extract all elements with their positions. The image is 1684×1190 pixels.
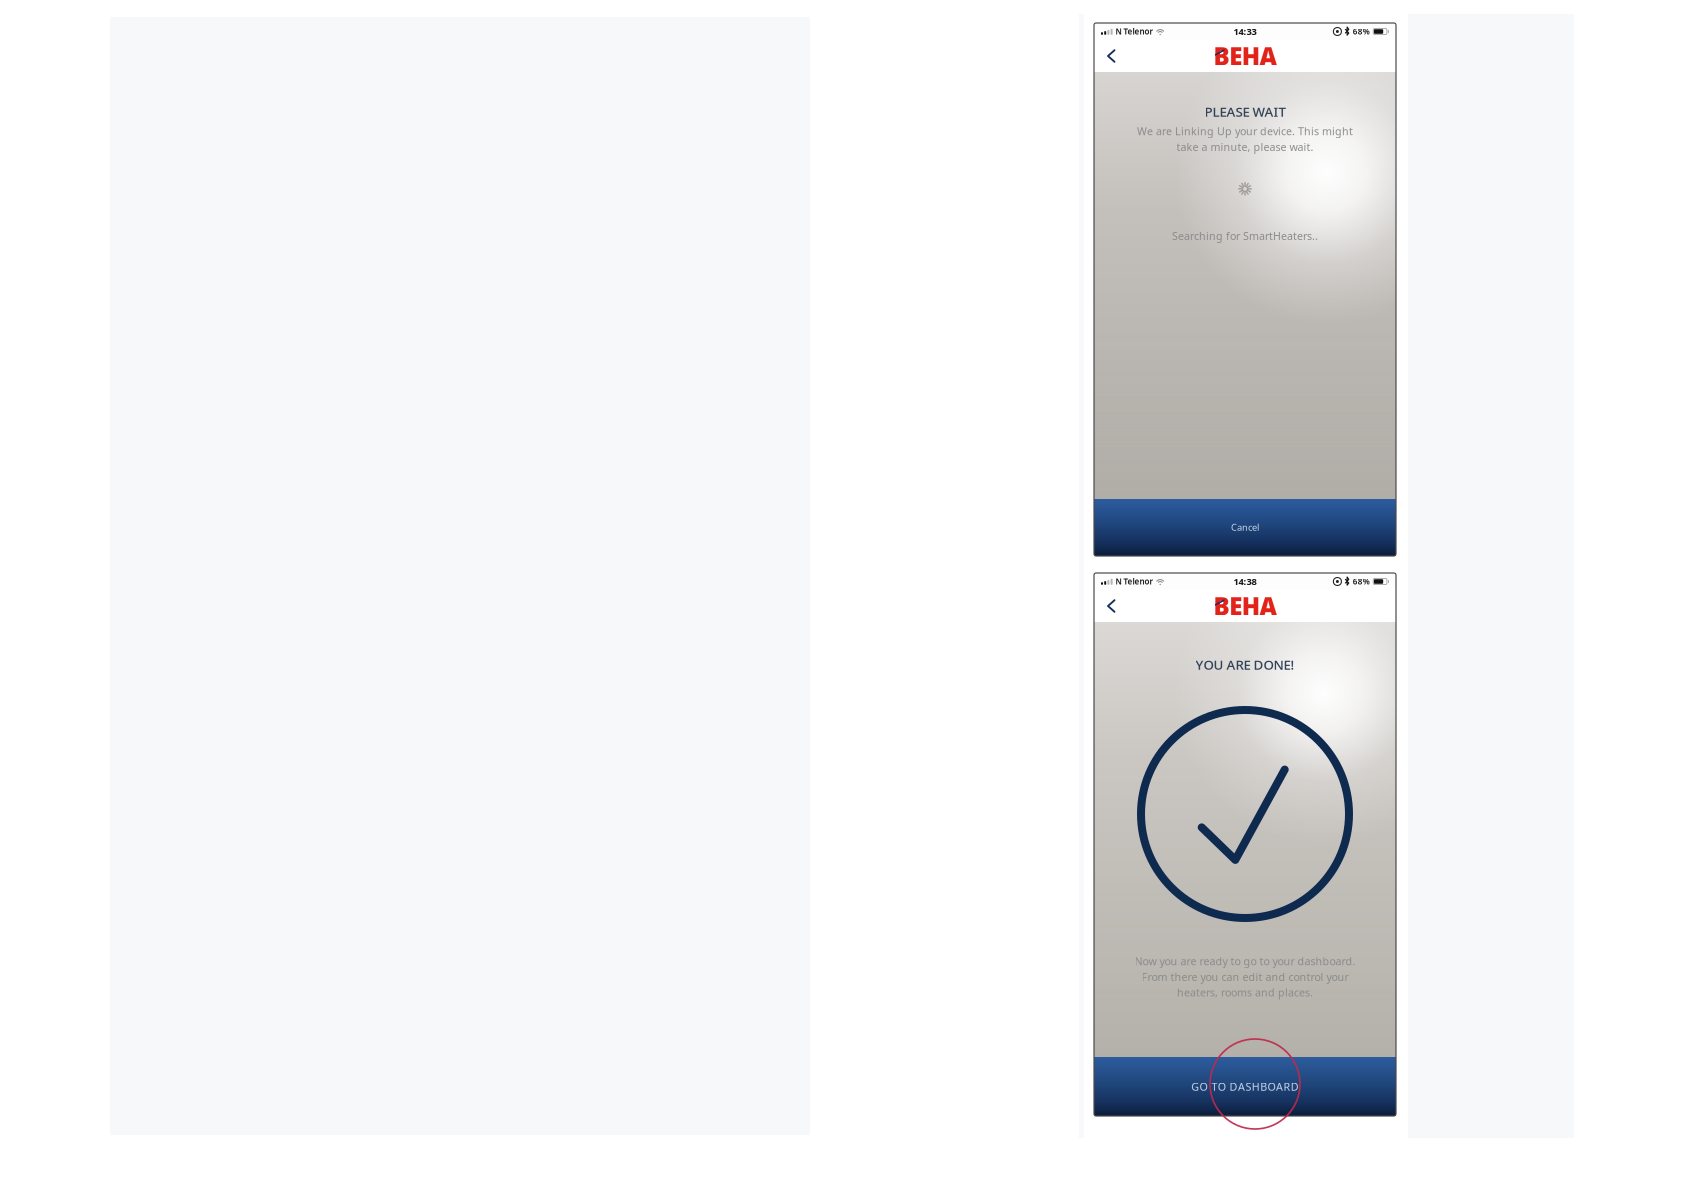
staticText: BEHA — [1213, 40, 1276, 72]
button[interactable]: Cancel — [1094, 499, 1396, 556]
staticText: From there you can edit and control your — [1141, 970, 1348, 984]
staticText: N Telenor — [1116, 576, 1153, 587]
staticText: GO TO DASHBOARD — [1191, 1079, 1299, 1094]
staticText: 14:38 — [1233, 575, 1256, 588]
staticText: BEHA — [1213, 590, 1276, 622]
staticText: PLEASE WAIT — [1204, 103, 1285, 120]
staticText: take a minute, please wait. — [1176, 140, 1313, 154]
staticText: Searching for SmartHeaters.. — [1172, 229, 1318, 243]
staticText: YOU ARE DONE! — [1195, 656, 1294, 673]
staticText: Cancel — [1231, 521, 1259, 533]
staticText: We are Linking Up your device. This migh… — [1137, 124, 1353, 138]
staticText: Now you are ready to go to your dashboar… — [1134, 954, 1355, 968]
staticText: 14:33 — [1233, 25, 1256, 38]
staticText: heaters, rooms and places. — [1177, 985, 1313, 999]
button[interactable]: Back — [1094, 591, 1126, 621]
staticText: 68% — [1353, 26, 1370, 37]
staticText: 68% — [1353, 576, 1370, 587]
button[interactable]: GO TO DASHBOARD — [1094, 1057, 1396, 1116]
staticText: N Telenor — [1116, 26, 1153, 37]
button[interactable]: Back — [1094, 41, 1126, 71]
